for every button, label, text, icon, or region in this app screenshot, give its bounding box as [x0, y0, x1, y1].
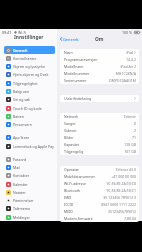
button[interactable]: Serienummer — [64, 77, 136, 84]
button[interactable]: Hjem-skjerm og Dock — [4, 70, 55, 78]
staticText: Kapasitet — [64, 142, 80, 147]
button[interactable]: Operatør — [64, 166, 136, 173]
staticText: Telenor — [123, 114, 136, 119]
staticText: Telenor 43.0 — [115, 167, 136, 172]
staticText: Notater — [13, 190, 26, 195]
staticText: 9C:F4:8E:2A:1B:C1 — [106, 188, 136, 193]
staticText: Generelt — [13, 48, 28, 53]
button[interactable]: Touch ID og kode — [4, 104, 55, 112]
staticText: Siri og søk — [13, 97, 30, 102]
staticText: Kontrollsenter — [13, 56, 37, 61]
staticText: 35123456789012 — [107, 209, 136, 214]
staticText: Kalender — [13, 182, 28, 187]
staticText: Sanger — [64, 121, 76, 126]
button[interactable]: Bluetooth — [64, 187, 136, 194]
staticText: Utskriftsdekning — [64, 96, 92, 101]
staticText: 2 — [133, 128, 136, 133]
button[interactable]: Mobildatanummer — [64, 173, 136, 180]
other: Back — [60, 37, 62, 41]
button[interactable]: Meldinger — [4, 213, 55, 221]
button[interactable]: MEID — [64, 208, 136, 215]
button[interactable]: Talememo — [4, 204, 55, 212]
staticText: Innstillinger — [14, 34, 44, 41]
button[interactable]: Utskriftsdekning — [64, 95, 136, 102]
button[interactable]: Passord — [4, 155, 55, 163]
staticText: Touch ID og kode — [13, 106, 42, 111]
staticText: IMEI — [64, 195, 72, 200]
staticText: 9C:F4:8E:2A:1B:C0 — [106, 181, 136, 186]
staticText: 35 123456 789012 3 — [103, 195, 136, 200]
staticText: Wi-Fi — [18, 30, 27, 35]
staticText: Talememo — [13, 206, 31, 211]
button[interactable]: Batteri — [4, 112, 55, 120]
button[interactable]: Kontakter — [4, 171, 55, 179]
staticText: Hjem-skjerm og Dock — [13, 72, 49, 77]
button[interactable]: Modem-firmware — [64, 215, 136, 222]
button[interactable]: Sanger — [64, 120, 136, 127]
staticText: Skjerm og lysstyrke — [13, 64, 45, 69]
staticText: Modellnavn — [64, 64, 84, 69]
staticText: Nettverk — [64, 114, 79, 119]
button[interactable]: Bilder — [64, 134, 136, 141]
staticText: Påminnelser — [13, 198, 34, 203]
button[interactable]: Tilgjengelighet — [4, 79, 55, 87]
staticText: 8947 0000 1111 2222 — [101, 202, 136, 207]
button[interactable]: Kontrollsenter — [4, 54, 55, 62]
staticText: App Store — [13, 135, 30, 140]
staticText: Om — [95, 36, 104, 43]
button[interactable]: Navn — [64, 49, 136, 56]
staticText: MH1C2KN/A — [115, 71, 136, 76]
button[interactable]: Modellnavn — [64, 63, 136, 70]
button[interactable]: Siri og søk — [4, 95, 55, 103]
button[interactable]: Lommebok og Apple Pay — [4, 142, 55, 150]
button[interactable]: Notater — [4, 188, 55, 196]
staticText: 100 % — [122, 30, 133, 35]
staticText: iPad — [125, 50, 133, 55]
staticText: 09:41 — [2, 30, 12, 35]
button[interactable]: Kapasitet — [64, 141, 136, 148]
staticText: Modellnummer — [64, 71, 90, 76]
staticText: 128 GB — [124, 142, 136, 147]
staticText: 7.80.04 — [124, 216, 136, 221]
button[interactable]: IMEI — [64, 194, 136, 201]
staticText: 14.4.2 — [126, 57, 136, 62]
staticText: ICCID — [64, 202, 74, 207]
button[interactable]: Generelt — [4, 46, 55, 54]
button[interactable]: Personvern — [4, 120, 55, 128]
staticText: Wi-Fi-adresse — [64, 181, 86, 186]
staticText: Bakgrunn — [13, 89, 30, 94]
button[interactable]: Skjerm og lysstyrke — [4, 62, 55, 70]
staticText: Operatør — [64, 167, 80, 172]
button[interactable]: Nettverk — [64, 113, 136, 120]
button[interactable]: Programvareversjon — [64, 56, 136, 63]
button[interactable]: Videoer — [64, 127, 136, 134]
button[interactable]: Tilgjengelig — [64, 148, 136, 155]
button[interactable]: Wi-Fi-adresse — [64, 180, 136, 187]
staticText: 107 GB — [124, 149, 136, 154]
button[interactable]: Kalender — [4, 180, 55, 188]
staticText: Tilgjengelighet — [13, 81, 38, 86]
button[interactable]: Back — [60, 29, 79, 49]
staticText: Programvareversjon — [64, 57, 98, 62]
button[interactable]: Mail — [4, 163, 55, 171]
staticText: MEID — [64, 209, 73, 214]
staticText: Kontakter — [13, 173, 30, 178]
staticText: Mobildatanummer — [64, 174, 95, 179]
button[interactable]: App Store — [4, 133, 55, 141]
staticText: Passord — [13, 157, 27, 162]
staticText: Navn — [64, 50, 73, 55]
staticText: Batteri — [13, 114, 25, 119]
staticText: Serienummer — [64, 78, 87, 83]
button[interactable]: Bakgrunn — [4, 87, 55, 95]
staticText: Bilder — [64, 135, 74, 140]
staticText: Generelt — [63, 37, 79, 42]
staticText: Modem-firmware — [64, 216, 93, 221]
staticText: Videoer — [64, 128, 77, 133]
button[interactable]: ICCID — [64, 201, 136, 208]
staticText: 0 — [133, 121, 136, 126]
staticText: +47 000 00 000 — [111, 174, 136, 179]
staticText: 71 — [131, 135, 136, 140]
staticText: Personvern — [13, 122, 32, 127]
button[interactable]: Påminnelser — [4, 196, 55, 204]
button[interactable]: Modellnummer — [64, 70, 136, 77]
